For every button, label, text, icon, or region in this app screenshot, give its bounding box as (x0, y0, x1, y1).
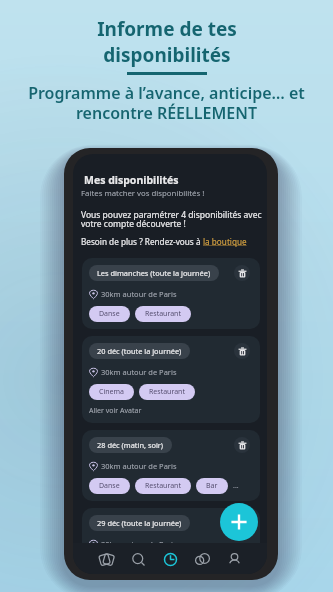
button[interactable]: 20 déc (toute la journée) (82, 336, 260, 423)
staticText: Vous pouvez paramétrer 4 disponibilités … (81, 209, 262, 229)
staticText: Mes disponibilités (84, 173, 179, 187)
button[interactable]: Messages (188, 545, 216, 573)
button[interactable]: Restaurant (135, 478, 191, 494)
staticText: Danse (99, 481, 120, 491)
button[interactable]: 28 déc (matin, soir) (82, 430, 260, 501)
staticText: 30km autour de Paris (101, 289, 177, 299)
button[interactable]: Cinema (89, 384, 134, 400)
staticText: Informe de tes disponibilités (97, 16, 237, 68)
button[interactable]: Disponibilités (156, 545, 184, 573)
staticText: Les dimanches (toute la journée) (97, 268, 211, 278)
staticText: Besoin de plus ? Rendez-vous à (81, 236, 203, 247)
staticText: Danse (99, 309, 120, 319)
button[interactable]: 29 déc (toute la journée) (82, 508, 260, 556)
button[interactable]: Bar (196, 478, 228, 494)
button[interactable]: Ajouter une disponibilité (220, 503, 258, 541)
staticText: Aller voir Avatar (89, 406, 142, 416)
staticText: 30km autour de Paris (101, 461, 177, 471)
staticText: 28 déc (matin, soir) (97, 440, 164, 450)
staticText: Restaurant (149, 387, 185, 397)
staticText: Restaurant (145, 309, 181, 319)
button[interactable]: Profil (220, 545, 248, 573)
staticText: Restaurant (145, 481, 181, 491)
staticText: 29 déc (toute la journée) (97, 518, 182, 528)
button[interactable]: Recherche (124, 545, 152, 573)
button[interactable]: Supprimer (234, 265, 250, 281)
button[interactable]: Danse (89, 478, 130, 494)
staticText: Programme à l’avance, anticipe… et renco… (28, 82, 305, 123)
staticText: Bar (206, 481, 218, 491)
button[interactable]: Supprimer (234, 515, 250, 531)
button[interactable]: Cartes (92, 545, 120, 573)
staticText: Faites matcher vos disponibilités ! (81, 188, 205, 199)
staticText: Cinema (99, 387, 124, 397)
staticText: 30km autour de Paris (101, 539, 177, 549)
staticText: ... (233, 481, 239, 491)
button[interactable]: Supprimer (234, 343, 250, 359)
staticText: 20 déc (toute la journée) (97, 346, 182, 356)
button[interactable]: Danse (89, 306, 130, 322)
button[interactable]: Restaurant (135, 306, 191, 322)
button[interactable]: Les dimanches (toute la journée) (82, 258, 260, 329)
button[interactable]: Restaurant (139, 384, 195, 400)
staticText: la boutique (203, 236, 247, 247)
button[interactable]: Supprimer (234, 437, 250, 453)
staticText: 30km autour de Paris (101, 367, 177, 377)
